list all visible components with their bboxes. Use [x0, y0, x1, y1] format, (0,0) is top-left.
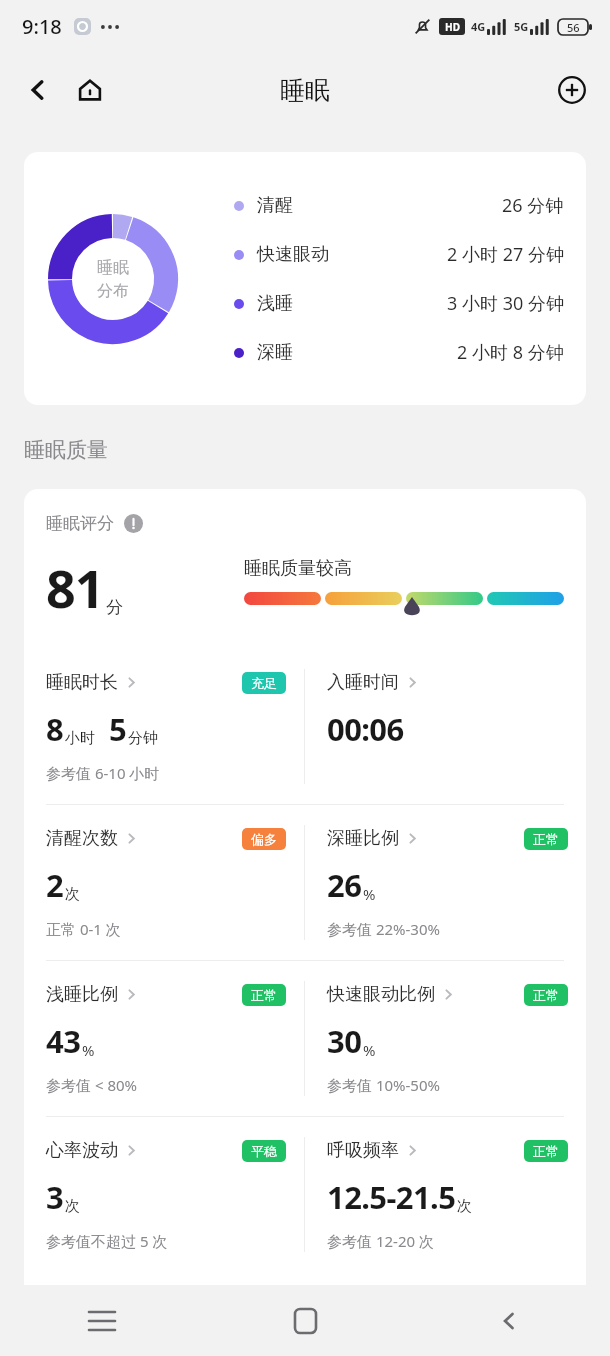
staticText: 小时 — [65, 729, 95, 748]
staticText: 平稳 — [251, 1143, 277, 1159]
button[interactable]: 心率波动 — [24, 1117, 304, 1272]
staticText: 睡眠评分 — [46, 513, 114, 534]
staticText: 参考值 10%-50% — [327, 1075, 440, 1095]
staticText: 00:06 — [327, 708, 404, 750]
button[interactable]: 浅睡比例 — [24, 961, 304, 1116]
button[interactable]: 呼吸频率 — [305, 1117, 586, 1272]
staticText: 浅睡比例 — [46, 983, 118, 1006]
staticText: 2 小时 8 分钟 — [457, 340, 564, 365]
button[interactable]: 睡眠评分 — [46, 513, 143, 534]
staticText: 2 — [46, 864, 64, 906]
staticText: 参考值 22%-30% — [327, 919, 440, 939]
staticText: 56 — [567, 20, 580, 35]
staticText: 参考值 6-10 小时 — [46, 763, 160, 783]
staticText: 分布 — [97, 281, 129, 301]
button[interactable]: 入睡时间 — [305, 649, 586, 804]
staticText: 清醒 — [257, 194, 293, 217]
staticText: 12.5-21.5 — [327, 1176, 456, 1218]
staticText: 3 — [46, 1176, 64, 1218]
staticText: 分 — [106, 597, 123, 618]
staticText: 呼吸频率 — [327, 1139, 399, 1162]
staticText: 心率波动 — [46, 1139, 118, 1162]
button[interactable]: 深睡比例 — [305, 805, 586, 960]
staticText: 3 小时 30 分钟 — [447, 291, 564, 316]
staticText: 睡眠 — [280, 75, 330, 106]
staticText: 正常 — [533, 831, 559, 847]
staticText: % — [363, 884, 376, 904]
staticText: 9:18 — [22, 13, 62, 40]
staticText: 快速眼动比例 — [327, 983, 435, 1006]
staticText: 正常 — [533, 1143, 559, 1159]
staticText: HD — [445, 20, 460, 34]
staticText: % — [82, 1040, 95, 1060]
staticText: 睡眠质量 — [24, 437, 108, 463]
staticText: 快速眼动 — [257, 243, 329, 266]
button[interactable]: 睡眠 — [24, 152, 586, 405]
staticText: 43 — [46, 1020, 81, 1062]
staticText: 参考值 12-20 次 — [327, 1231, 434, 1251]
staticText: 参考值 < 80% — [46, 1075, 138, 1095]
staticText: 浅睡 — [257, 292, 293, 315]
button[interactable]: 快速眼动比例 — [305, 961, 586, 1116]
staticText: 清醒次数 — [46, 827, 118, 850]
staticText: 次 — [65, 1197, 80, 1216]
staticText: 5 — [109, 708, 127, 750]
staticText: 5G — [514, 19, 529, 34]
staticText: 入睡时间 — [327, 671, 399, 694]
button[interactable]: 睡眠时长 — [24, 649, 304, 804]
staticText: 睡眠质量较高 — [244, 557, 352, 580]
staticText: 8 — [46, 708, 64, 750]
staticText: 次 — [65, 885, 80, 904]
button[interactable]: Home — [66, 66, 114, 114]
staticText: 正常 — [533, 987, 559, 1003]
staticText: 正常 — [251, 987, 277, 1003]
staticText: 睡眠时长 — [46, 671, 118, 694]
staticText: 参考值不超过 5 次 — [46, 1231, 168, 1251]
staticText: 分钟 — [128, 729, 158, 748]
button[interactable]: Back — [407, 1285, 610, 1356]
staticText: 26 分钟 — [502, 193, 564, 218]
button[interactable]: Back — [14, 66, 62, 114]
staticText: 充足 — [251, 675, 277, 691]
staticText: 2 小时 27 分钟 — [447, 242, 564, 267]
staticText: 深睡比例 — [327, 827, 399, 850]
staticText: % — [363, 1040, 376, 1060]
button[interactable]: Recents — [0, 1285, 204, 1356]
staticText: 偏多 — [251, 831, 277, 847]
staticText: 81 — [46, 552, 104, 623]
button[interactable]: 清醒次数 — [24, 805, 304, 960]
button[interactable]: Home — [204, 1285, 407, 1356]
staticText: 正常 0-1 次 — [46, 919, 121, 939]
button[interactable]: Add — [548, 66, 596, 114]
staticText: 30 — [327, 1020, 362, 1062]
staticText: 次 — [457, 1197, 472, 1216]
staticText: 睡眠 — [97, 258, 129, 278]
staticText: 26 — [327, 864, 362, 906]
staticText: 深睡 — [257, 341, 293, 364]
staticText: 4G — [471, 19, 486, 34]
